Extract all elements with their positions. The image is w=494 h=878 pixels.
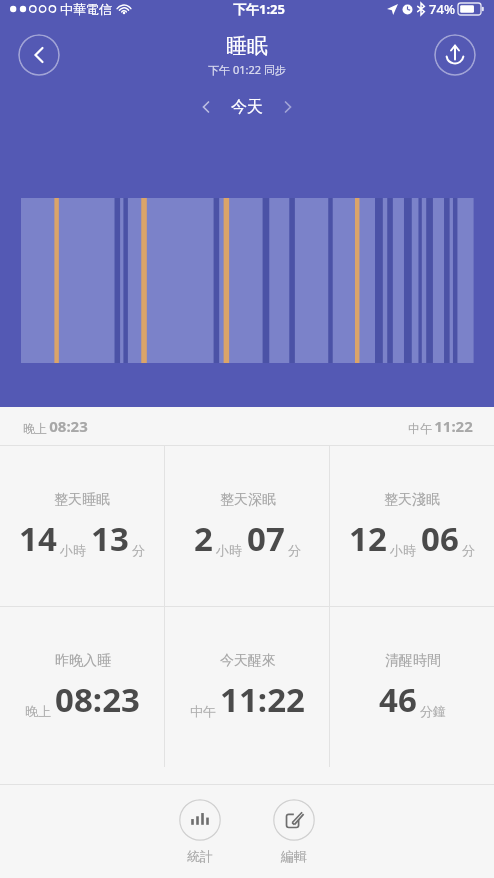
button[interactable]: 今天醒來 — [165, 607, 329, 767]
button[interactable]: 編輯 — [267, 799, 321, 864]
staticText: 小時 — [60, 542, 86, 558]
staticText: 12 — [349, 516, 387, 561]
staticText: 整天深眠 — [220, 491, 276, 509]
staticText: 08:23 — [49, 416, 88, 436]
button[interactable]: 統計 — [173, 799, 227, 864]
staticText: 2 — [194, 516, 213, 561]
staticText: 11:22 — [434, 416, 473, 436]
button[interactable]: 昨晚入睡 — [0, 607, 164, 767]
staticText: 11:22 — [220, 677, 305, 722]
staticText: 晚上 — [25, 703, 51, 719]
staticText: 整天睡眠 — [54, 491, 110, 509]
staticText: 46 — [379, 677, 417, 722]
staticText: 清醒時間 — [385, 652, 441, 670]
staticText: 睡眠 — [226, 33, 268, 59]
staticText: 小時 — [216, 542, 242, 558]
button[interactable]: 整天睡眠 — [0, 446, 164, 606]
staticText: 分 — [132, 542, 145, 558]
staticText: 中午 — [190, 703, 216, 719]
staticText: 08:23 — [55, 677, 140, 722]
staticText: 整天淺眠 — [384, 491, 440, 509]
staticText: 編輯 — [281, 848, 307, 864]
staticText: 晚上 — [21, 420, 49, 436]
button[interactable]: Sync — [434, 34, 476, 76]
staticText: 昨晚入睡 — [55, 652, 111, 670]
staticText: 統計 — [187, 848, 213, 864]
button[interactable]: 今天 — [198, 97, 296, 117]
staticText: 小時 — [390, 542, 416, 558]
staticText: 14 — [19, 516, 57, 561]
staticText: 今天 — [231, 97, 263, 117]
staticText: 13 — [91, 516, 129, 561]
staticText: 中華電信 — [60, 1, 112, 17]
staticText: 06 — [421, 516, 459, 561]
button[interactable]: 整天深眠 — [165, 446, 329, 606]
staticText: 分 — [462, 542, 475, 558]
button[interactable]: Back — [18, 34, 60, 76]
button[interactable]: 整天淺眠 — [330, 446, 494, 606]
staticText: 中午 — [406, 420, 434, 436]
staticText: 下午 01:22 同步 — [208, 62, 286, 77]
staticText: 下午1:25 — [233, 0, 285, 18]
button[interactable]: 清醒時間 — [330, 607, 494, 767]
staticText: 今天醒來 — [220, 652, 276, 670]
staticText: 分 — [288, 542, 301, 558]
staticText: 74% — [429, 0, 455, 18]
staticText: 07 — [247, 516, 285, 561]
staticText: 分鐘 — [420, 703, 446, 719]
